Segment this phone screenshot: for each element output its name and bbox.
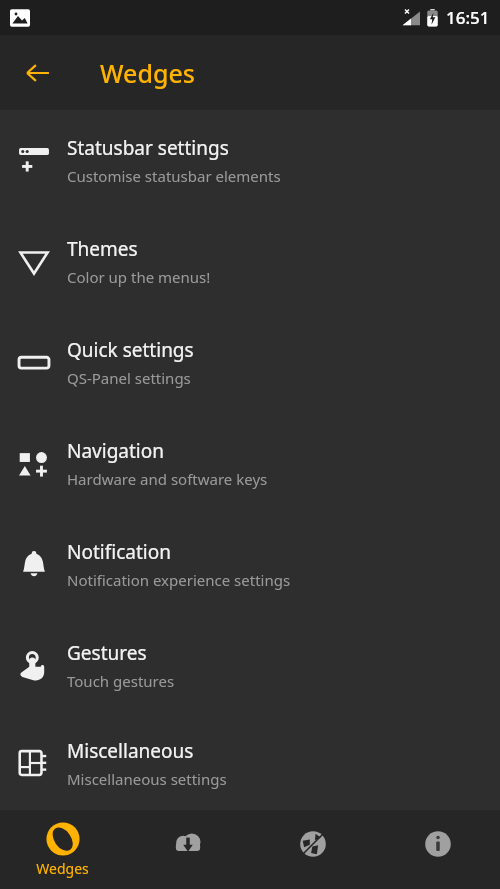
button[interactable]: Themes [0, 211, 500, 312]
staticText: Hardware and software keys [67, 469, 268, 489]
staticText: Color up the menus! [67, 267, 211, 287]
button[interactable]: Quick settings [0, 312, 500, 413]
button[interactable]: Miscellaneous [0, 716, 500, 810]
button[interactable]: Downloads [125, 810, 250, 889]
staticText: Statusbar settings [67, 135, 229, 161]
button[interactable]: Gestures [0, 615, 500, 716]
button[interactable]: Navigation [0, 413, 500, 514]
staticText: 16:51 [446, 6, 490, 29]
staticText: Quick settings [67, 337, 194, 363]
staticText: Notification experience settings [67, 570, 291, 590]
staticText: Navigation [67, 438, 164, 464]
staticText: Customise statusbar elements [67, 166, 281, 186]
button[interactable]: About [375, 810, 500, 889]
staticText: QS-Panel settings [67, 368, 191, 388]
staticText: Wedges [100, 56, 195, 90]
staticText: Touch gestures [67, 671, 175, 691]
button[interactable]: Back [14, 49, 62, 97]
staticText: Themes [67, 236, 138, 262]
staticText: Miscellaneous [67, 738, 194, 764]
button[interactable]: Notification [0, 514, 500, 615]
staticText: Gestures [67, 640, 147, 666]
button[interactable]: Wedges [0, 810, 125, 889]
button[interactable]: Statusbar settings [0, 110, 500, 211]
button[interactable]: Website [250, 810, 375, 889]
staticText: Wedges [36, 859, 89, 878]
staticText: Miscellaneous settings [67, 769, 227, 789]
staticText: Notification [67, 539, 171, 565]
